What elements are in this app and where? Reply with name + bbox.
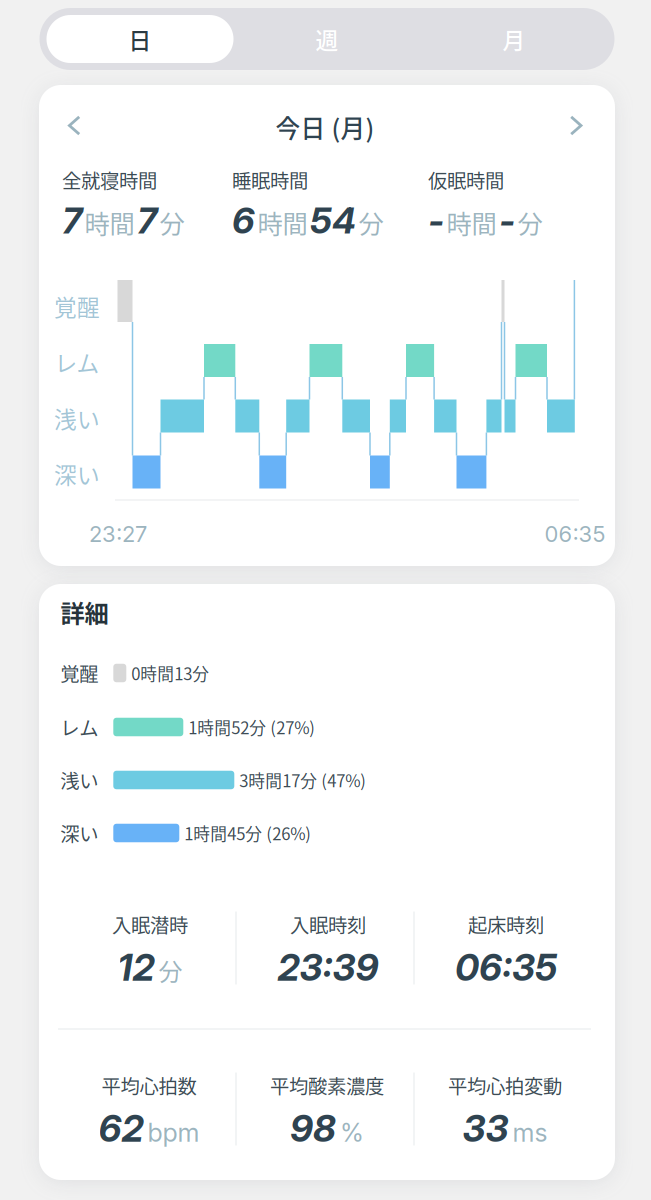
button[interactable]: Previous day xyxy=(46,102,102,148)
staticText: 54 xyxy=(310,199,356,242)
staticText: 23:39 xyxy=(277,945,378,990)
staticText: 06:35 xyxy=(544,521,605,547)
staticText: 6 xyxy=(232,199,255,242)
staticText: 深い xyxy=(54,457,100,490)
staticText: bpm xyxy=(147,1117,199,1148)
staticText: 日 xyxy=(128,23,151,55)
staticText: 分 xyxy=(158,953,182,988)
button[interactable]: 月 xyxy=(420,15,607,63)
staticText: 覚醒 xyxy=(54,290,100,322)
staticText: 時間 xyxy=(446,204,496,241)
staticText: 深い xyxy=(60,819,98,847)
staticText: 月 xyxy=(502,23,525,55)
staticText: 時間 xyxy=(84,204,134,241)
button[interactable]: Next day xyxy=(548,102,604,148)
button[interactable]: 日 xyxy=(46,15,233,63)
staticText: 分 xyxy=(517,204,542,241)
staticText: 06:35 xyxy=(455,945,557,990)
staticText: 3時間17分 (47%) xyxy=(239,768,366,792)
staticText: 0時間13分 xyxy=(131,661,209,685)
staticText: - xyxy=(428,199,444,242)
staticText: 33 xyxy=(462,1106,508,1151)
staticText: 覚醒 xyxy=(60,659,98,687)
staticText: 起床時刻 xyxy=(468,910,544,938)
staticText: 平均酸素濃度 xyxy=(270,1071,384,1099)
staticText: レム xyxy=(54,346,99,378)
staticText: 1時間45分 (26%) xyxy=(184,821,311,845)
staticText: 平均心拍数 xyxy=(101,1071,196,1099)
staticText: 時間 xyxy=(257,204,307,241)
staticText: 1時間52分 (27%) xyxy=(188,715,315,739)
staticText: 仮眠時間 xyxy=(428,166,504,194)
staticText: 分 xyxy=(159,204,184,241)
staticText: 詳細 xyxy=(60,594,108,629)
button[interactable]: 週 xyxy=(233,15,420,63)
staticText: 98 xyxy=(290,1106,336,1151)
staticText: 全就寝時間 xyxy=(62,166,157,194)
staticText: ms xyxy=(512,1117,547,1148)
staticText: 今日 (月) xyxy=(275,109,374,145)
staticText: 睡眠時間 xyxy=(232,166,308,194)
staticText: 23:27 xyxy=(89,521,147,547)
staticText: 浅い xyxy=(54,402,100,434)
staticText: 7 xyxy=(62,199,82,242)
staticText: - xyxy=(499,199,515,242)
staticText: レム xyxy=(60,713,98,741)
staticText: 12 xyxy=(117,945,154,990)
staticText: 62 xyxy=(98,1106,143,1151)
staticText: 入眠潜時 xyxy=(112,910,188,938)
staticText: 浅い xyxy=(60,766,98,794)
staticText: 入眠時刻 xyxy=(290,910,366,938)
staticText: 7 xyxy=(137,199,157,242)
staticText: 平均心拍変動 xyxy=(448,1071,562,1099)
staticText: 分 xyxy=(358,204,383,241)
staticText: % xyxy=(340,1117,364,1148)
staticText: 週 xyxy=(315,23,338,55)
